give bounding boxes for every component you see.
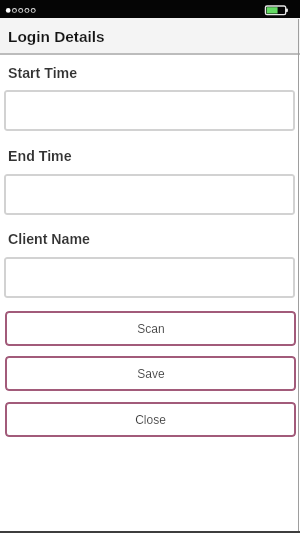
staticText: Scan [137, 322, 165, 335]
staticText: Client Name [8, 231, 90, 247]
button[interactable]: Start Time field [4, 90, 295, 131]
button[interactable]: Scan [5, 311, 296, 346]
button[interactable]: End Time field [4, 174, 295, 215]
staticText: Start Time [8, 65, 78, 81]
staticText: End Time [8, 148, 72, 164]
button[interactable]: Close [5, 402, 296, 437]
staticText: Close [135, 413, 166, 426]
button[interactable]: Save [5, 356, 296, 391]
button[interactable]: Client Name field [4, 257, 295, 298]
staticText: Save [137, 367, 165, 380]
staticText: Login Details [8, 28, 105, 45]
